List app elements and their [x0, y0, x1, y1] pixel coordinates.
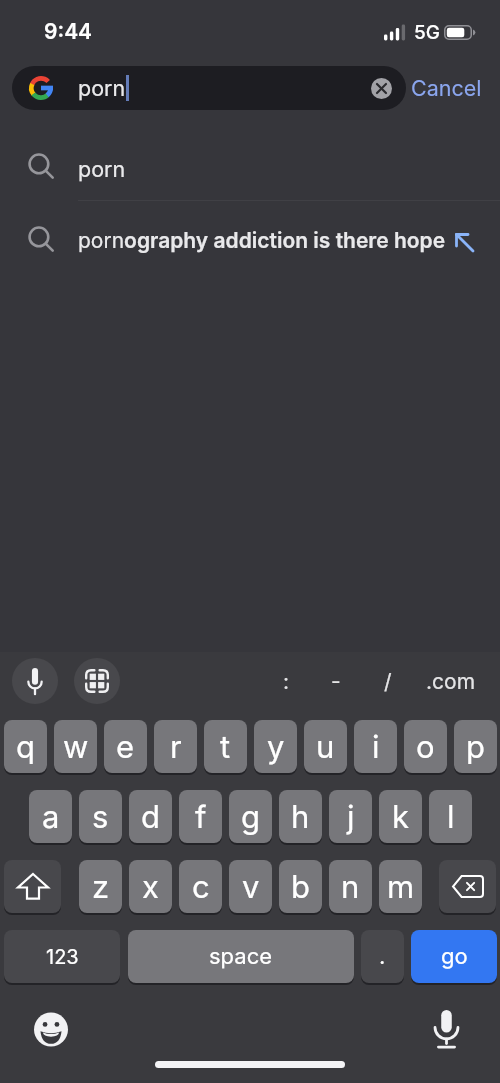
- button[interactable]: [431, 1010, 462, 1049]
- staticText: h: [291, 798, 310, 836]
- button[interactable]: porn: [12, 66, 406, 110]
- button[interactable]: go: [411, 930, 497, 983]
- staticText: l: [447, 798, 455, 836]
- button[interactable]: .com: [418, 658, 484, 704]
- button[interactable]: :: [266, 658, 306, 704]
- staticText: e: [116, 728, 135, 766]
- button[interactable]: s: [79, 790, 122, 843]
- button[interactable]: m: [379, 860, 422, 913]
- button[interactable]: l: [429, 790, 472, 843]
- button[interactable]: [371, 78, 392, 99]
- button[interactable]: p: [454, 720, 497, 773]
- staticText: d: [141, 798, 160, 836]
- button[interactable]: b: [279, 860, 322, 913]
- staticText: p: [466, 728, 485, 766]
- staticText: q: [16, 728, 35, 766]
- staticText: o: [416, 728, 435, 766]
- button[interactable]: /: [368, 658, 408, 704]
- button[interactable]: r: [154, 720, 197, 773]
- staticText: b: [291, 868, 310, 906]
- button[interactable]: n: [329, 860, 372, 913]
- button[interactable]: i: [354, 720, 397, 773]
- staticText: m: [387, 868, 415, 906]
- button[interactable]: -: [316, 658, 356, 704]
- staticText: c: [192, 868, 210, 906]
- button[interactable]: space: [128, 930, 354, 983]
- staticText: i: [372, 728, 380, 766]
- staticText: go: [441, 943, 468, 970]
- button[interactable]: [74, 658, 120, 704]
- staticText: u: [316, 728, 335, 766]
- button[interactable]: t: [204, 720, 247, 773]
- button[interactable]: [439, 860, 496, 913]
- button[interactable]: g: [229, 790, 272, 843]
- staticText: f: [195, 798, 207, 836]
- staticText: -: [331, 669, 341, 694]
- staticText: t: [220, 728, 231, 766]
- staticText: :: [283, 669, 290, 694]
- staticText: y: [267, 728, 285, 766]
- staticText: porn: [78, 75, 126, 101]
- staticText: /: [384, 669, 392, 694]
- staticText: .com: [426, 669, 476, 694]
- staticText: .: [379, 943, 386, 970]
- staticText: 5G: [414, 21, 440, 44]
- button[interactable]: w: [54, 720, 97, 773]
- staticText: 123: [46, 945, 79, 969]
- staticText: x: [142, 868, 159, 906]
- button[interactable]: q: [4, 720, 47, 773]
- staticText: Cancel: [411, 75, 482, 101]
- staticText: v: [242, 868, 260, 906]
- button[interactable]: [4, 860, 61, 913]
- button[interactable]: porn: [0, 137, 500, 200]
- button[interactable]: y: [254, 720, 297, 773]
- staticText: pornography addiction is there hope: [78, 228, 446, 253]
- button[interactable]: k: [379, 790, 422, 843]
- button[interactable]: [34, 1012, 68, 1047]
- button[interactable]: v: [229, 860, 272, 913]
- staticText: j: [347, 798, 355, 836]
- staticText: w: [63, 728, 89, 766]
- button[interactable]: c: [179, 860, 222, 913]
- button[interactable]: u: [304, 720, 347, 773]
- button[interactable]: pornography addiction is there hope: [0, 201, 500, 279]
- button[interactable]: e: [104, 720, 147, 773]
- button[interactable]: 123: [4, 930, 120, 983]
- button[interactable]: Cancel: [400, 66, 493, 110]
- button[interactable]: .: [361, 930, 404, 983]
- button[interactable]: h: [279, 790, 322, 843]
- staticText: porn: [78, 156, 126, 182]
- staticText: a: [42, 798, 60, 836]
- button[interactable]: d: [129, 790, 172, 843]
- button[interactable]: a: [29, 790, 72, 843]
- staticText: g: [241, 798, 261, 836]
- staticText: n: [341, 868, 360, 906]
- staticText: s: [92, 798, 109, 836]
- button[interactable]: z: [79, 860, 122, 913]
- staticText: space: [209, 943, 273, 970]
- staticText: 9:44: [44, 19, 93, 44]
- button[interactable]: o: [404, 720, 447, 773]
- staticText: k: [392, 798, 410, 836]
- button[interactable]: f: [179, 790, 222, 843]
- button[interactable]: [12, 658, 58, 704]
- button[interactable]: x: [129, 860, 172, 913]
- staticText: r: [170, 728, 182, 766]
- button[interactable]: j: [329, 790, 372, 843]
- staticText: z: [92, 868, 110, 906]
